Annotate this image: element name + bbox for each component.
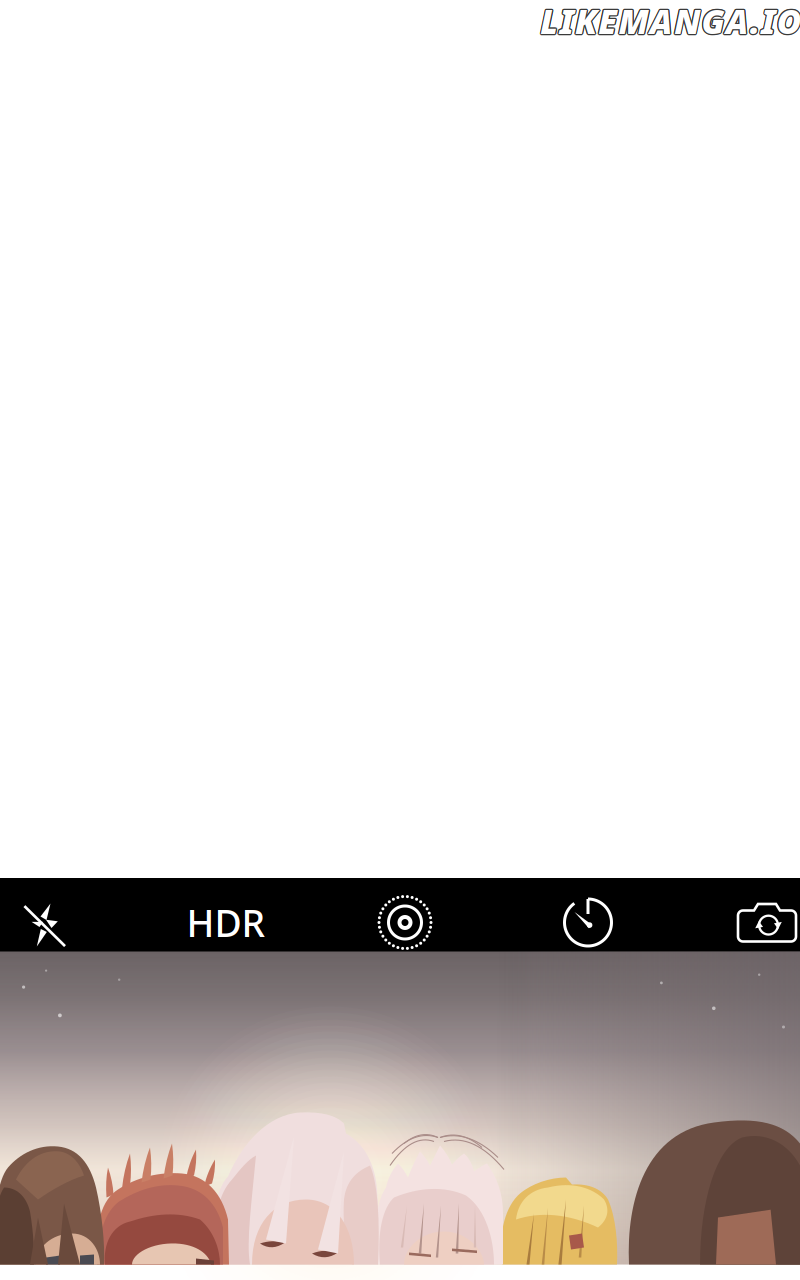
staticText: HDR — [186, 898, 265, 947]
staticText: LIKEMANGA.IO — [539, 0, 800, 44]
staticText: LIKEMANGA.IO — [540, 0, 800, 43]
button[interactable]: Switch camera — [712, 878, 800, 967]
button[interactable]: Timer — [533, 878, 643, 967]
button[interactable]: Flash off — [0, 878, 90, 967]
button[interactable]: Live Photo — [350, 878, 460, 967]
staticText: LIKEMANGA.IO — [539, 0, 800, 42]
staticText: LIKEMANGA.IO — [540, 0, 800, 44]
staticText: LIKEMANGA.IO — [542, 0, 800, 43]
button[interactable]: HDR — [161, 878, 291, 967]
staticText: LIKEMANGA.IO — [541, 0, 800, 42]
staticText: LIKEMANGA.IO — [540, 0, 800, 42]
staticText: LIKEMANGA.IO — [541, 0, 800, 44]
staticText: LIKEMANGA.IO — [539, 0, 800, 43]
